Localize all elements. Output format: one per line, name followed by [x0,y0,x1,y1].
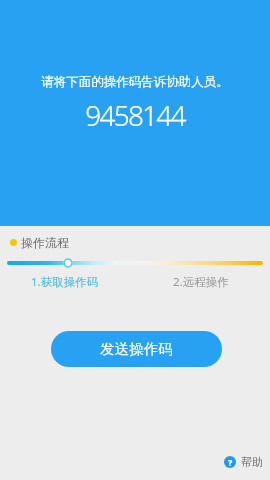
button[interactable]: 9458144 [0,96,270,134]
other: Help [224,456,236,468]
staticText: 2.远程操作 [173,274,229,290]
staticText: 操作流程 [21,235,69,250]
staticText: 发送操作码 [100,340,173,358]
staticText: 请将下面的操作码告诉协助人员。 [0,74,270,90]
button[interactable]: 发送操作码 [51,331,222,367]
button[interactable]: Help [224,455,263,469]
staticText: 帮助 [241,455,263,469]
staticText: 1.获取操作码 [31,274,99,290]
staticText: ? [228,456,233,468]
